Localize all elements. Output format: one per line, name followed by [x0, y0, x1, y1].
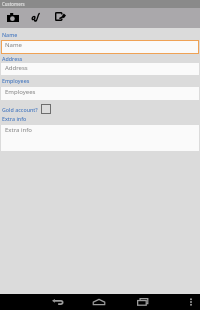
button[interactable]: Gold account? — [0, 104, 51, 114]
button[interactable]: Address — [1, 63, 199, 75]
button[interactable]: Extra info — [1, 125, 199, 151]
staticText: Extra info — [5, 126, 32, 134]
staticText: Gold account? — [2, 106, 38, 113]
staticText: Employees — [5, 88, 36, 96]
button[interactable]: Back — [46, 294, 68, 310]
button[interactable]: Employees — [1, 87, 199, 100]
staticText: Customers — [2, 1, 25, 7]
staticText: Employees — [2, 77, 30, 84]
staticText: Extra info — [2, 115, 27, 122]
button[interactable]: Name — [1, 40, 199, 54]
button[interactable]: Log out — [46, 8, 70, 28]
staticText: Address — [5, 64, 28, 72]
button[interactable]: More options — [182, 294, 200, 310]
button[interactable]: Signature — [24, 8, 46, 28]
staticText: Name — [2, 31, 18, 38]
staticText: Name — [5, 41, 22, 49]
staticText: Address — [2, 55, 23, 62]
button[interactable]: Home — [88, 294, 110, 310]
button[interactable]: Recent apps — [131, 294, 153, 310]
button[interactable]: Take photo — [0, 8, 24, 28]
